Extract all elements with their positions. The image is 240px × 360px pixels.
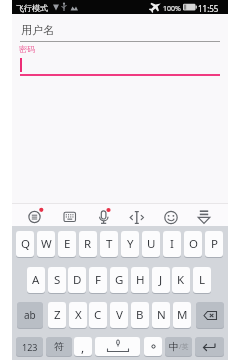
button[interactable]: M xyxy=(173,302,191,328)
staticText: /英 xyxy=(179,342,189,352)
staticText: J xyxy=(159,272,163,288)
button[interactable] xyxy=(124,205,147,226)
button[interactable] xyxy=(20,44,220,77)
button[interactable]: G xyxy=(110,267,128,293)
staticText: Z xyxy=(54,307,61,323)
staticText: V xyxy=(116,307,123,323)
staticText: M xyxy=(177,307,188,323)
staticText: 中 xyxy=(169,340,179,353)
staticText: C xyxy=(94,307,102,323)
staticText: P xyxy=(211,236,218,252)
button[interactable] xyxy=(95,337,140,356)
staticText: 123 xyxy=(22,341,38,353)
button[interactable] xyxy=(196,302,224,328)
button[interactable] xyxy=(23,205,46,226)
button[interactable]: T xyxy=(100,231,118,257)
button[interactable]: I xyxy=(163,231,181,257)
button[interactable]: X xyxy=(69,302,87,328)
button[interactable]: O xyxy=(184,231,202,257)
staticText: U xyxy=(147,236,156,252)
staticText: W xyxy=(41,236,52,252)
button[interactable] xyxy=(195,337,224,356)
button[interactable]: J xyxy=(152,267,170,293)
button[interactable]: 符 xyxy=(46,337,72,356)
button[interactable]: A xyxy=(27,267,45,293)
staticText: Y xyxy=(127,236,134,252)
button[interactable]: N xyxy=(152,302,170,328)
staticText: F xyxy=(95,272,101,288)
button[interactable] xyxy=(20,16,220,42)
button[interactable]: S xyxy=(48,267,66,293)
button[interactable]: W xyxy=(37,231,55,257)
button[interactable]: V xyxy=(110,302,128,328)
button[interactable]: , xyxy=(74,337,92,356)
button[interactable]: H xyxy=(131,267,149,293)
button[interactable]: Z xyxy=(48,302,66,328)
button[interactable]: B xyxy=(131,302,149,328)
button[interactable] xyxy=(57,205,80,226)
staticText: T xyxy=(106,236,113,252)
button[interactable] xyxy=(191,205,214,226)
button[interactable]: U xyxy=(142,231,160,257)
staticText: B xyxy=(136,307,144,323)
button[interactable]: 123 xyxy=(16,337,43,356)
staticText: 11:55 xyxy=(198,3,219,14)
staticText: R xyxy=(84,236,92,252)
button[interactable]: 中 xyxy=(165,337,192,356)
staticText: K xyxy=(177,272,185,288)
button[interactable] xyxy=(157,205,180,226)
staticText: I xyxy=(170,236,174,252)
staticText: E xyxy=(64,236,71,252)
button[interactable]: E xyxy=(58,231,76,257)
staticText: G xyxy=(115,272,124,288)
staticText: D xyxy=(73,272,82,288)
button[interactable] xyxy=(144,337,162,356)
staticText: , xyxy=(81,339,85,355)
staticText: 密码 xyxy=(19,44,35,54)
button[interactable]: Y xyxy=(121,231,139,257)
button[interactable]: Q xyxy=(16,231,34,257)
button[interactable]: D xyxy=(68,267,86,293)
button[interactable]: P xyxy=(205,231,223,257)
staticText: Q xyxy=(21,236,30,252)
staticText: A xyxy=(32,272,40,288)
button[interactable]: K xyxy=(172,267,190,293)
staticText: 飞行模式 xyxy=(16,3,48,13)
staticText: 100% xyxy=(163,4,181,14)
staticText: X xyxy=(75,307,82,323)
staticText: L xyxy=(199,272,206,288)
staticText: O xyxy=(189,236,198,252)
staticText: N xyxy=(157,307,166,323)
button[interactable]: C xyxy=(89,302,107,328)
staticText: 用户名 xyxy=(21,23,54,37)
button[interactable]: ab xyxy=(17,302,43,328)
staticText: 符 xyxy=(54,340,64,353)
staticText: S xyxy=(54,272,61,288)
button[interactable]: R xyxy=(79,231,97,257)
button[interactable]: F xyxy=(89,267,107,293)
button[interactable] xyxy=(90,205,113,226)
button[interactable]: L xyxy=(193,267,211,293)
staticText: ab xyxy=(24,308,36,322)
staticText: H xyxy=(136,272,145,288)
